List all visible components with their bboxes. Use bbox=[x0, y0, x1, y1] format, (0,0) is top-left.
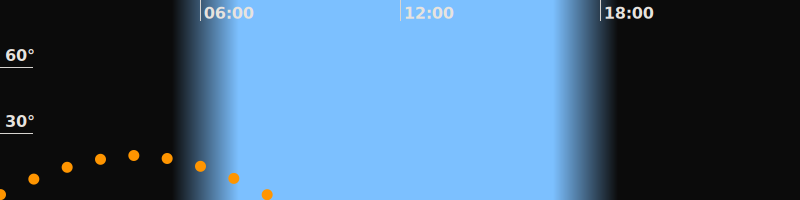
staticText: 12:00 bbox=[404, 4, 454, 23]
staticText: 60° bbox=[5, 46, 35, 65]
staticText: 06:00 bbox=[204, 4, 254, 23]
staticText: 18:00 bbox=[604, 4, 654, 23]
staticText: 30° bbox=[5, 112, 35, 131]
